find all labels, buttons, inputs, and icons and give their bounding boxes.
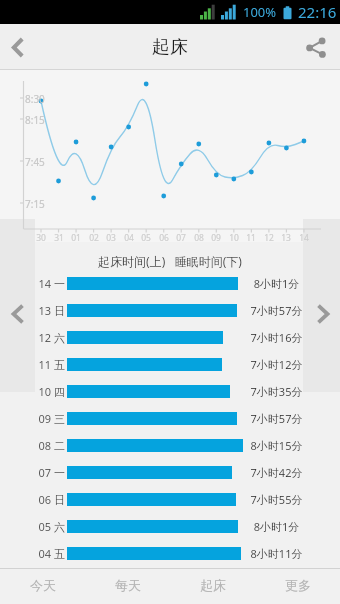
staticText: 7小时57分 [241,303,312,318]
staticText: 31 [51,232,67,244]
button[interactable]: 13 日 [35,297,312,324]
staticText: 05 六 [35,519,65,534]
staticText: 07 [173,232,189,244]
staticText: 今天 [30,577,56,593]
staticText: 每天 [115,577,141,593]
staticText: 04 [121,232,137,244]
staticText: 7小时55分 [241,492,312,507]
staticText: 01 [68,232,84,244]
staticText: 起床时间(上) 睡眠时间(下) [0,253,340,269]
button[interactable]: 04 五 [35,540,312,567]
staticText: 7小时16分 [241,330,312,345]
staticText: 08 二 [35,438,65,453]
staticText: 14 一 [35,276,65,291]
button[interactable]: 14 一 [35,270,312,297]
staticText: 12 六 [35,330,65,345]
staticText: 起床 [200,577,226,593]
staticText: 10 四 [35,384,65,399]
staticText: 10 [226,232,242,244]
staticText: 更多 [285,577,311,593]
staticText: 06 [156,232,172,244]
button[interactable]: 今天 [0,569,85,600]
button[interactable] [0,24,42,70]
staticText: 02 [86,232,102,244]
staticText: 13 [278,232,294,244]
staticText: 09 [208,232,224,244]
button[interactable] [0,296,35,332]
button[interactable]: 11 五 [35,351,312,378]
button[interactable]: 起床 [170,569,255,600]
staticText: 7小时57分 [241,411,312,426]
staticText: 100% [243,3,277,21]
staticText: 7:15 [25,197,45,211]
staticText: 22:16 [298,2,337,22]
staticText: 8小时15分 [241,438,312,453]
staticText: 8小时1分 [241,519,312,534]
staticText: 8小时1分 [241,276,312,291]
staticText: 05 [138,232,154,244]
button[interactable]: 09 三 [35,405,312,432]
staticText: 30 [33,232,49,244]
button[interactable] [305,296,340,332]
staticText: 13 日 [35,303,65,318]
staticText: 06 日 [35,492,65,507]
staticText: 09 三 [35,411,65,426]
staticText: 7:45 [25,155,45,169]
button[interactable]: 08 二 [35,432,312,459]
staticText: 8:15 [25,113,45,127]
button[interactable]: 每天 [85,569,170,600]
staticText: 14 [296,232,312,244]
staticText: 03 [103,232,119,244]
staticText: 8小时11分 [241,546,312,561]
staticText: 11 五 [35,357,65,372]
button[interactable]: 12 六 [35,324,312,351]
button[interactable] [296,24,340,70]
staticText: 12 [261,232,277,244]
staticText: 11 [243,232,259,244]
staticText: 7小时42分 [241,465,312,480]
staticText: 7小时12分 [241,357,312,372]
button[interactable]: 06 日 [35,486,312,513]
staticText: 04 五 [35,546,65,561]
staticText: 07 一 [35,465,65,480]
staticText: 08 [191,232,207,244]
button[interactable]: 10 四 [35,378,312,405]
staticText: 8:30 [25,92,45,106]
staticText: 起床 [152,36,188,59]
button[interactable]: 05 六 [35,513,312,540]
button[interactable]: 07 一 [35,459,312,486]
button[interactable]: 更多 [255,569,340,600]
staticText: 7小时35分 [241,384,312,399]
